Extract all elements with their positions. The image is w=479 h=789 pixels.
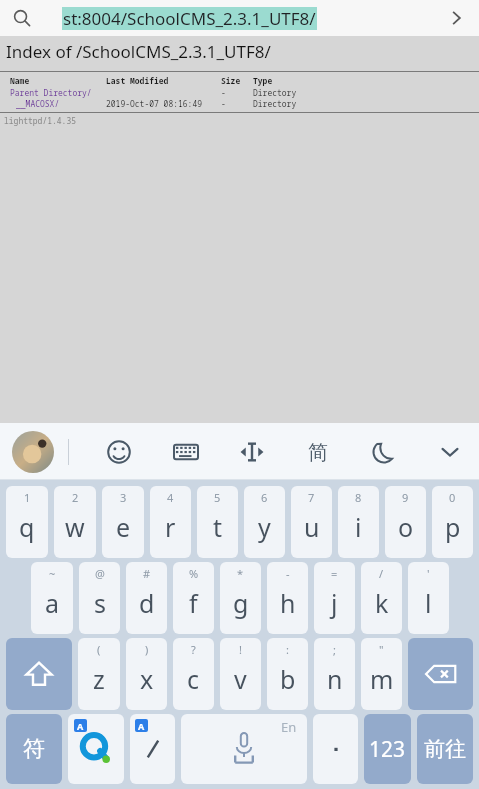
button[interactable]: Slash — [130, 714, 175, 784]
button[interactable]: QQ input — [68, 714, 124, 784]
staticText: 前往 — [424, 736, 466, 762]
button[interactable]: Emoji — [102, 435, 136, 469]
staticText: g — [233, 586, 249, 620]
staticText: m — [370, 662, 394, 696]
staticText: Parent Directory/ — [10, 87, 92, 98]
staticText: 简 — [308, 440, 328, 465]
staticText: y — [258, 510, 271, 544]
staticText: p — [445, 510, 461, 544]
staticText: n — [327, 662, 343, 696]
button[interactable]: @ — [79, 562, 120, 634]
staticText: 2 — [72, 490, 79, 505]
staticText: 2019-Oct-07 08:16:49 — [106, 98, 202, 109]
button[interactable]: Search — [8, 4, 36, 32]
staticText: o — [398, 510, 414, 544]
button[interactable]: 3 — [102, 486, 144, 558]
staticText: ~ — [49, 566, 56, 581]
staticText: c — [187, 662, 200, 696]
staticText: Directory — [253, 87, 297, 98]
button[interactable]: Numbers — [364, 714, 411, 784]
staticText: : — [286, 642, 289, 657]
button[interactable]: Night mode — [367, 435, 401, 469]
button[interactable]: Go — [417, 714, 473, 784]
staticText: f — [189, 586, 198, 620]
staticText: ! — [239, 642, 242, 657]
staticText: " — [379, 642, 384, 657]
staticText: En — [281, 718, 297, 736]
staticText: h — [280, 586, 296, 620]
staticText: 4 — [167, 490, 174, 505]
staticText: x — [140, 662, 154, 696]
button[interactable]: Forward — [441, 3, 471, 33]
button[interactable]: Symbols — [6, 714, 62, 784]
staticText: 0 — [449, 490, 456, 505]
staticText: w — [65, 510, 85, 544]
button[interactable]: Backspace — [408, 638, 473, 710]
staticText: k — [375, 586, 389, 620]
button[interactable]: / — [361, 562, 402, 634]
button[interactable]: 0 — [432, 486, 473, 558]
button[interactable]: Profile — [12, 431, 54, 473]
button[interactable]: 4 — [150, 486, 191, 558]
button[interactable]: 5 — [197, 486, 238, 558]
button[interactable]: # — [126, 562, 167, 634]
staticText: a — [45, 586, 60, 620]
button[interactable]: : — [267, 638, 308, 710]
staticText: q — [19, 510, 35, 544]
staticText: Name — [10, 75, 106, 86]
button[interactable]: Period — [313, 714, 358, 784]
staticText: r — [165, 510, 176, 544]
staticText: s — [94, 586, 106, 620]
button[interactable]: " — [361, 638, 402, 710]
staticText: l — [425, 586, 432, 620]
staticText: Size — [221, 75, 253, 86]
staticText: @ — [95, 566, 105, 581]
staticText: 7 — [308, 490, 315, 505]
button[interactable]: Keyboard layout — [169, 435, 203, 469]
button[interactable]: - — [267, 562, 308, 634]
staticText: st:8004/SchoolCMS_2.3.1_UTF8/ — [63, 7, 316, 30]
staticText: % — [189, 566, 199, 581]
button[interactable]: % — [173, 562, 214, 634]
staticText: v — [234, 662, 247, 696]
button[interactable]: 2 — [54, 486, 96, 558]
staticText: Last Modified — [106, 75, 221, 86]
staticText: d — [139, 586, 155, 620]
button[interactable]: ; — [314, 638, 355, 710]
staticText: - — [221, 98, 226, 109]
staticText: t — [213, 510, 223, 544]
staticText: u — [304, 510, 320, 544]
staticText: # — [143, 566, 151, 581]
button[interactable]: 1 — [6, 486, 48, 558]
staticText: * — [237, 566, 244, 581]
button[interactable]: ? — [173, 638, 214, 710]
staticText: ? — [191, 642, 196, 657]
staticText: Index of /SchoolCMS_2.3.1_UTF8/ — [6, 40, 271, 63]
staticText: b — [280, 662, 296, 696]
staticText: ; — [333, 642, 336, 657]
staticText: A — [138, 720, 145, 732]
button[interactable]: ( — [78, 638, 120, 710]
button[interactable]: 6 — [244, 486, 285, 558]
button[interactable]: Shift — [6, 638, 72, 710]
button[interactable]: Space / voice input — [181, 714, 307, 784]
button[interactable]: ! — [220, 638, 261, 710]
button[interactable]: ' — [408, 562, 449, 634]
button[interactable]: ) — [126, 638, 167, 710]
button[interactable]: = — [314, 562, 355, 634]
staticText: 符 — [23, 735, 45, 763]
button[interactable]: 7 — [291, 486, 332, 558]
button[interactable]: Resize keyboard — [235, 435, 269, 469]
staticText: ) — [145, 642, 149, 657]
button[interactable]: * — [220, 562, 261, 634]
staticText: 6 — [261, 490, 268, 505]
button[interactable]: ~ — [31, 562, 73, 634]
staticText: ( — [97, 642, 101, 657]
staticText: Type — [253, 75, 273, 86]
staticText: lighttpd/1.4.35 — [4, 115, 76, 126]
button[interactable]: 简 — [301, 435, 335, 469]
button[interactable]: Collapse keyboard — [433, 435, 467, 469]
button[interactable]: 8 — [338, 486, 379, 558]
button[interactable]: 9 — [385, 486, 426, 558]
staticText: 8 — [355, 490, 362, 505]
